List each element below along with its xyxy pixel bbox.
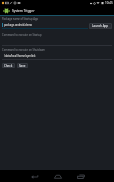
button[interactable]: Home — [46, 170, 69, 182]
button[interactable]: Launch App — [89, 23, 112, 29]
button[interactable]: Check — [2, 63, 15, 68]
button[interactable] — [2, 39, 112, 46]
button[interactable]: package.android.demo — [2, 22, 88, 29]
staticText: Command to execute on Shutdown — [2, 48, 45, 52]
staticText: Launch App — [92, 24, 109, 28]
button[interactable]: Save — [17, 63, 28, 68]
staticText: /data/local/home/symlink — [4, 54, 36, 58]
staticText: 10:45 — [105, 1, 113, 5]
staticText: Save — [19, 64, 26, 68]
staticText: System Trigger — [12, 9, 35, 13]
button[interactable]: Recent apps — [69, 170, 92, 182]
staticText: Command to execute on Startup — [2, 33, 42, 37]
staticText: Package name of Startup App — [2, 17, 39, 21]
button[interactable]: Back — [23, 170, 46, 182]
staticText: package.android.demo — [4, 23, 33, 27]
staticText: Check — [4, 64, 13, 68]
button[interactable]: /data/local/home/symlink — [2, 53, 112, 60]
